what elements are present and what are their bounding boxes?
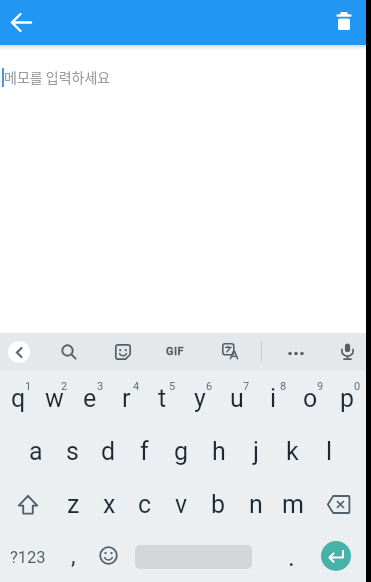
staticText: 5: [169, 380, 176, 393]
staticText: 0: [354, 380, 361, 393]
button[interactable]: GIF: [157, 333, 194, 370]
button[interactable]: g: [163, 423, 200, 476]
button[interactable]: [50, 333, 87, 370]
button[interactable]: k: [274, 423, 311, 476]
staticText: 4: [133, 380, 140, 393]
button[interactable]: u: [218, 370, 255, 423]
button[interactable]: n: [237, 476, 274, 529]
staticText: v: [175, 490, 188, 519]
staticText: i: [270, 384, 277, 413]
staticText: a: [29, 437, 43, 466]
staticText: x: [103, 490, 116, 519]
staticText: 6: [206, 380, 213, 393]
button[interactable]: w: [36, 370, 72, 423]
button[interactable]: t: [144, 370, 181, 423]
button[interactable]: a: [18, 423, 54, 476]
staticText: 2: [61, 380, 68, 393]
staticText: g: [174, 437, 189, 466]
button[interactable]: [104, 333, 141, 370]
button[interactable]: [311, 476, 366, 529]
staticText: j: [253, 437, 259, 466]
staticText: 1: [25, 380, 32, 393]
button[interactable]: [0, 476, 55, 529]
button[interactable]: f: [126, 423, 163, 476]
button[interactable]: j: [237, 423, 274, 476]
button[interactable]: [322, 1, 366, 45]
staticText: 9: [317, 380, 324, 393]
staticText: u: [230, 384, 244, 413]
staticText: 7: [243, 380, 250, 393]
button[interactable]: [329, 333, 366, 370]
button[interactable]: c: [127, 476, 163, 529]
button[interactable]: ?123: [0, 529, 55, 582]
button[interactable]: ,: [55, 529, 92, 582]
staticText: y: [194, 384, 206, 413]
staticText: l: [326, 437, 333, 466]
button[interactable]: l: [311, 423, 348, 476]
button[interactable]: v: [163, 476, 200, 529]
button[interactable]: [212, 333, 249, 370]
button[interactable]: y: [181, 370, 218, 423]
staticText: ?123: [10, 548, 46, 567]
staticText: ,: [71, 543, 76, 570]
button[interactable]: s: [54, 423, 90, 476]
button[interactable]: o: [292, 370, 329, 423]
staticText: z: [67, 490, 80, 519]
staticText: d: [101, 437, 116, 466]
staticText: t: [158, 384, 167, 413]
staticText: q: [11, 384, 26, 413]
staticText: w: [45, 384, 64, 413]
button[interactable]: q: [0, 370, 36, 423]
staticText: c: [138, 490, 152, 519]
staticText: .: [288, 542, 295, 572]
button[interactable]: p: [329, 370, 366, 423]
button[interactable]: [8, 341, 30, 363]
button[interactable]: b: [200, 476, 237, 529]
button[interactable]: [277, 333, 314, 370]
button[interactable]: e: [72, 370, 108, 423]
staticText: r: [122, 384, 131, 413]
staticText: GIF: [166, 345, 185, 358]
staticText: 메모를 입력하세요: [4, 67, 111, 87]
button[interactable]: z: [55, 476, 91, 529]
staticText: e: [83, 384, 97, 413]
button[interactable]: x: [91, 476, 127, 529]
staticText: b: [211, 490, 226, 519]
staticText: m: [282, 490, 304, 519]
staticText: k: [286, 437, 299, 466]
staticText: s: [66, 437, 79, 466]
staticText: 3: [97, 380, 104, 393]
button[interactable]: m: [274, 476, 311, 529]
button[interactable]: d: [90, 423, 126, 476]
button[interactable]: .: [273, 529, 310, 582]
button[interactable]: [90, 529, 127, 582]
button[interactable]: r: [108, 370, 144, 423]
button[interactable]: i: [255, 370, 292, 423]
staticText: o: [303, 384, 318, 413]
staticText: f: [140, 437, 149, 466]
staticText: n: [249, 490, 263, 519]
staticText: 8: [280, 380, 287, 393]
button[interactable]: [321, 541, 351, 571]
button[interactable]: h: [200, 423, 237, 476]
staticText: h: [212, 437, 226, 466]
staticText: p: [340, 384, 355, 413]
button[interactable]: [0, 2, 42, 44]
